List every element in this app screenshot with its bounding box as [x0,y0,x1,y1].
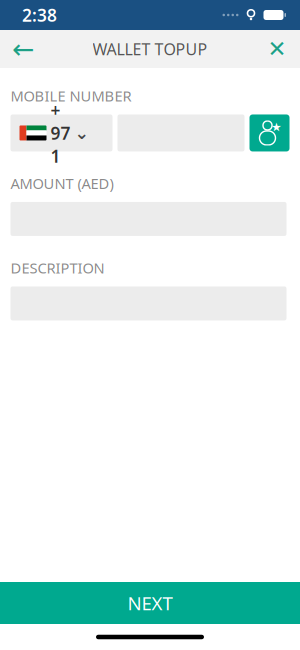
button[interactable]: Choose contact [249,114,289,151]
staticText: ✕ [267,36,286,62]
staticText: ⌄ [74,123,89,143]
staticText: NEXT [127,591,172,615]
staticText: ← [12,34,34,64]
staticText: MOBILE NUMBER [10,86,131,105]
staticText: 2:38 [22,3,57,26]
staticText: ★ [271,120,282,134]
button[interactable]: Country code + 971 [10,114,112,151]
staticText: + 971 [50,98,70,168]
button[interactable]: Back [2,30,44,68]
button[interactable]: Close [256,30,298,68]
staticText: WALLET TOPUP [92,38,207,60]
staticText: AMOUNT (AED) [10,173,113,193]
button[interactable]: NEXT [0,582,300,624]
staticText: DESCRIPTION [10,258,104,277]
